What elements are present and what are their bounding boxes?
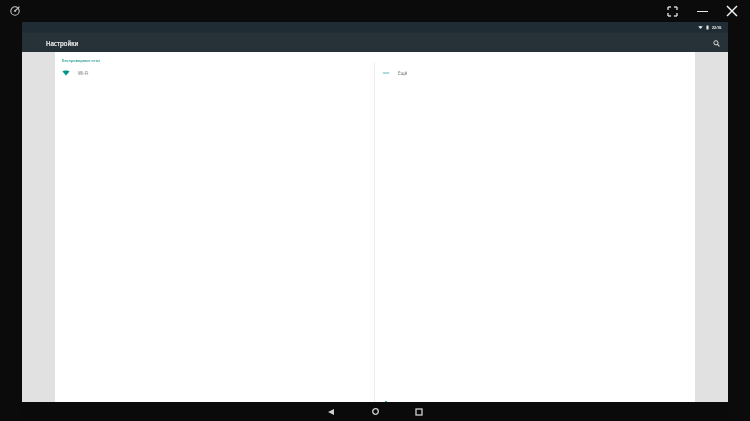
button[interactable]: Search	[710, 37, 722, 49]
button[interactable]: Home	[364, 402, 386, 421]
button[interactable]: Recents	[408, 402, 430, 421]
staticText: Настройки	[46, 39, 79, 47]
button[interactable]: Back	[320, 402, 342, 421]
button[interactable]: Minimize	[694, 3, 710, 19]
button[interactable]: Power	[8, 4, 22, 18]
staticText: Ещё	[398, 70, 408, 76]
button[interactable]: Wi‑Fi	[55, 63, 374, 82]
button[interactable]: Ещё	[375, 63, 695, 82]
button[interactable]: Close	[724, 3, 740, 19]
button[interactable]: Fullscreen	[664, 3, 680, 19]
staticText: 22:16	[712, 25, 722, 30]
staticText: Wi‑Fi	[78, 70, 89, 76]
staticText: Беспроводные сети	[62, 58, 100, 63]
